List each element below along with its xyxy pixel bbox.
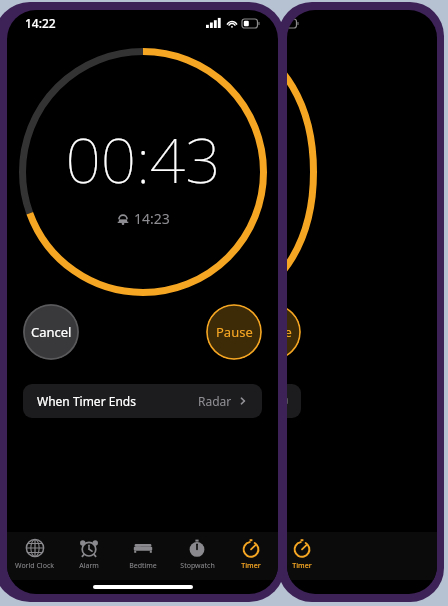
button[interactable]: When Timer Ends: [287, 384, 301, 418]
button[interactable]: When Timer Ends: [23, 384, 262, 418]
button[interactable]: Stopwatch: [170, 532, 224, 580]
button[interactable]: Pause: [206, 304, 262, 360]
staticText: Bedtime: [129, 561, 157, 571]
button[interactable]: Alarm: [62, 532, 116, 580]
button[interactable]: Pause: [287, 304, 301, 360]
staticText: Alarm: [79, 561, 99, 571]
staticText: 14:23: [134, 209, 170, 228]
button[interactable]: Timer: [224, 532, 278, 580]
staticText: Pause: [216, 323, 253, 341]
staticText: Cancel: [31, 323, 72, 341]
staticText: Pause: [287, 323, 292, 341]
staticText: 00:43: [65, 117, 221, 201]
staticText: World Clock: [15, 561, 54, 571]
staticText: Radar: [198, 393, 232, 409]
button[interactable]: Bedtime: [116, 532, 170, 580]
button[interactable]: Timer: [287, 532, 317, 580]
staticText: Timer: [292, 561, 312, 571]
staticText: Timer: [241, 561, 261, 571]
staticText: Stopwatch: [180, 561, 215, 571]
staticText: When Timer Ends: [37, 393, 136, 409]
button[interactable]: World Clock: [7, 532, 62, 580]
button[interactable]: Cancel: [23, 304, 79, 360]
staticText: 14:22: [25, 15, 56, 31]
